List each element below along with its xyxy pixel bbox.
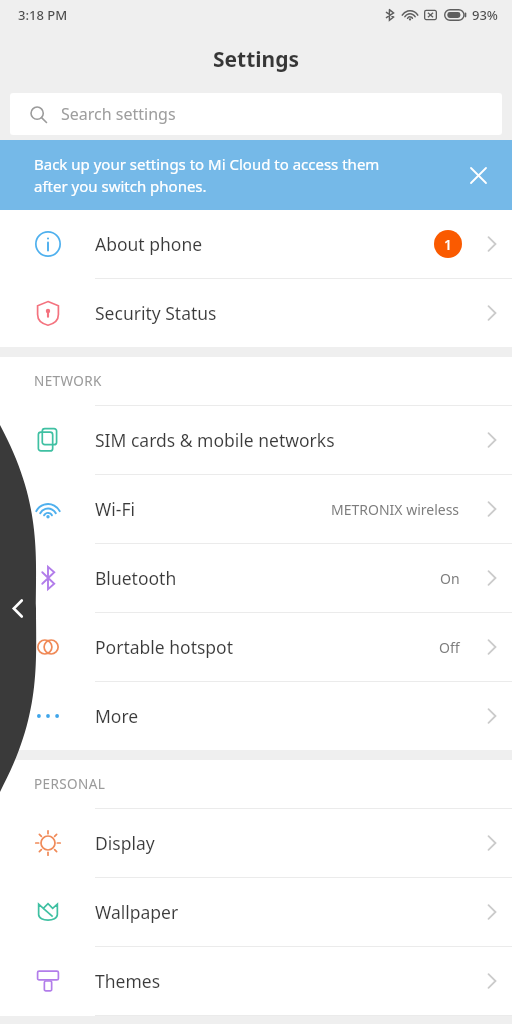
button[interactable]: About phone — [0, 210, 512, 278]
button[interactable]: More — [0, 682, 512, 750]
staticText: PERSONAL — [34, 775, 106, 793]
staticText: Portable hotspot — [95, 635, 439, 659]
staticText: About phone — [95, 232, 434, 256]
staticText: More — [95, 704, 472, 728]
button[interactable]: Display — [0, 809, 512, 877]
staticText: 3:18 PM — [18, 6, 68, 24]
staticText: Bluetooth — [95, 566, 440, 590]
button[interactable]: Portable hotspot — [0, 613, 512, 681]
button[interactable]: Security Status — [0, 279, 512, 347]
button[interactable]: SIM cards & mobile networks — [0, 406, 512, 474]
staticText: Themes — [95, 969, 472, 993]
button[interactable]: Wi-Fi — [0, 475, 512, 543]
staticText: Off — [439, 638, 460, 657]
staticText: Settings — [213, 45, 300, 74]
staticText: METRONIX wireless — [331, 500, 460, 519]
button[interactable]: Dismiss — [458, 155, 498, 195]
button[interactable]: Bluetooth — [0, 544, 512, 612]
button[interactable]: Back up your settings to Mi Cloud to acc… — [0, 140, 512, 210]
staticText: Wi-Fi — [95, 497, 331, 521]
staticText: Wallpaper — [95, 900, 472, 924]
staticText: 1 — [444, 235, 453, 254]
staticText: SIM cards & mobile networks — [95, 428, 472, 452]
staticText: On — [440, 569, 460, 588]
staticText: NETWORK — [34, 372, 102, 390]
staticText: Back up your settings to Mi Cloud to acc… — [34, 154, 380, 197]
button[interactable]: Wallpaper — [0, 878, 512, 946]
button[interactable]: Search settings — [10, 93, 502, 135]
staticText: 93% — [472, 6, 498, 24]
staticText: Search settings — [61, 103, 176, 125]
button[interactable]: Themes — [0, 947, 512, 1015]
staticText: Display — [95, 831, 472, 855]
staticText: Security Status — [95, 301, 472, 325]
